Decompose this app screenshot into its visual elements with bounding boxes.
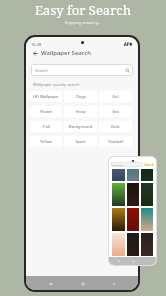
- button[interactable]: Sea: [99, 106, 132, 117]
- button[interactable]: [127, 208, 139, 231]
- button[interactable]: Back: [143, 258, 149, 264]
- staticText: Wallpaper Search: [41, 49, 91, 57]
- staticText: Easy for Search: [35, 1, 131, 19]
- button[interactable]: Fall: [30, 121, 62, 132]
- staticText: Bule: [111, 124, 120, 129]
- button[interactable]: Search: [31, 64, 133, 76]
- button[interactable]: Recents: [116, 258, 122, 264]
- button[interactable]: [127, 169, 139, 181]
- button[interactable]: [112, 183, 125, 206]
- button[interactable]: [127, 233, 139, 256]
- staticText: Wallpaper quickly search: [33, 82, 80, 87]
- button[interactable]: Yellow: [30, 136, 62, 147]
- button[interactable]: Background: [64, 121, 97, 132]
- button[interactable]: Back: [107, 277, 120, 290]
- staticText: Dogs: [76, 94, 86, 99]
- button[interactable]: [112, 208, 125, 231]
- button[interactable]: [127, 183, 139, 206]
- button[interactable]: [141, 233, 153, 256]
- staticText: Snow: [75, 109, 86, 114]
- button[interactable]: Girl: [99, 91, 132, 102]
- button[interactable]: Home: [130, 258, 136, 264]
- button[interactable]: Search: [144, 163, 154, 167]
- staticText: Search: [35, 68, 48, 73]
- button[interactable]: Snow: [64, 106, 97, 117]
- staticText: Enjoying amazing...: [65, 20, 102, 25]
- staticText: 16:38: [31, 42, 42, 47]
- staticText: Sea: [112, 109, 119, 114]
- staticText: Girl: [112, 94, 119, 99]
- staticText: Fall: [43, 124, 50, 129]
- button[interactable]: Football: [99, 136, 132, 147]
- staticText: Football: [108, 139, 124, 144]
- staticText: Flower: [40, 109, 53, 114]
- button[interactable]: Bule: [99, 121, 132, 132]
- button[interactable]: [112, 233, 125, 256]
- staticText: HD Wallpaper: [33, 94, 59, 99]
- staticText: Sport: [75, 139, 86, 144]
- button[interactable]: Dogs: [64, 91, 97, 102]
- button[interactable]: HD Wallpaper: [30, 91, 62, 102]
- button[interactable]: [141, 208, 153, 231]
- staticText: Background: [69, 124, 92, 129]
- button[interactable]: Back: [31, 49, 39, 57]
- button[interactable]: Flower: [30, 106, 62, 117]
- button[interactable]: [112, 169, 125, 181]
- button[interactable]: Home: [76, 277, 89, 290]
- button[interactable]: Recents: [44, 277, 57, 290]
- button[interactable]: [141, 183, 153, 206]
- button[interactable]: Sport: [64, 136, 97, 147]
- staticText: Yellow: [40, 139, 52, 144]
- staticText: Wallpaper: [112, 163, 124, 166]
- button[interactable]: Wallpaper: [111, 162, 143, 167]
